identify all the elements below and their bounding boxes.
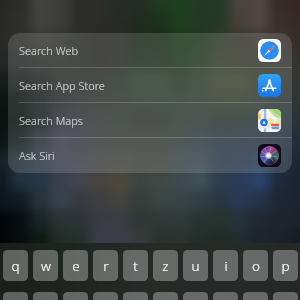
button[interactable]: i bbox=[213, 250, 238, 281]
button[interactable]: q bbox=[3, 250, 28, 281]
button[interactable]: p bbox=[273, 250, 298, 281]
staticText: Search Maps bbox=[19, 113, 83, 128]
button[interactable]: r bbox=[93, 250, 118, 281]
staticText: w bbox=[41, 257, 51, 275]
staticText: u bbox=[191, 257, 200, 275]
staticText: Search Web bbox=[19, 43, 79, 58]
button[interactable] bbox=[33, 292, 58, 300]
button[interactable] bbox=[63, 292, 88, 300]
button[interactable]: Search Web bbox=[8, 33, 292, 68]
staticText: Search App Store bbox=[19, 78, 105, 93]
button[interactable]: e bbox=[63, 250, 88, 281]
button[interactable] bbox=[153, 292, 178, 300]
staticText: p bbox=[281, 257, 290, 275]
button[interactable]: t bbox=[123, 250, 148, 281]
button[interactable]: z bbox=[153, 250, 178, 281]
button[interactable] bbox=[3, 292, 28, 300]
staticText: z bbox=[162, 257, 169, 275]
button[interactable]: o bbox=[243, 250, 268, 281]
button[interactable]: Search Maps bbox=[8, 103, 292, 138]
staticText: r bbox=[103, 257, 109, 275]
staticText: o bbox=[252, 257, 260, 275]
button[interactable]: Search App Store bbox=[8, 68, 292, 103]
button[interactable] bbox=[93, 292, 118, 300]
staticText: q bbox=[11, 257, 20, 275]
button[interactable]: w bbox=[33, 250, 58, 281]
button[interactable]: u bbox=[183, 250, 208, 281]
button[interactable]: Ask Siri bbox=[8, 138, 292, 173]
staticText: i bbox=[224, 257, 228, 275]
staticText: t bbox=[133, 257, 138, 275]
staticText: Ask Siri bbox=[19, 148, 55, 163]
button[interactable] bbox=[123, 292, 148, 300]
staticText: e bbox=[72, 257, 80, 275]
button[interactable] bbox=[273, 292, 298, 300]
button[interactable] bbox=[183, 292, 208, 300]
button[interactable] bbox=[213, 292, 238, 300]
button[interactable] bbox=[243, 292, 268, 300]
